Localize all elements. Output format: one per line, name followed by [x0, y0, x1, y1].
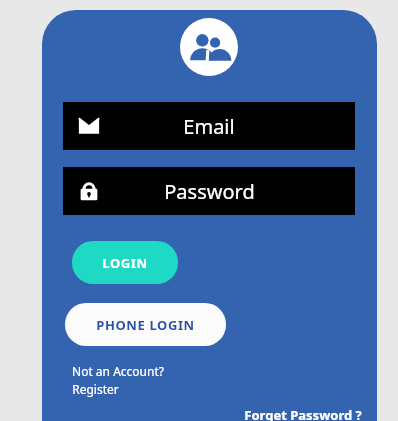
- staticText: PHONE LOGIN: [96, 316, 195, 334]
- staticText: LOGIN: [102, 254, 148, 272]
- button[interactable]: LOGIN: [72, 241, 178, 284]
- button[interactable]: Email: [63, 102, 355, 150]
- button[interactable]: PHONE LOGIN: [65, 303, 226, 346]
- staticText: Email: [183, 113, 235, 140]
- staticText: Not an Account?: [72, 363, 164, 379]
- other: App logo: [180, 18, 238, 76]
- staticText: Password: [164, 178, 255, 205]
- button[interactable]: Not an Account?: [70, 362, 166, 398]
- staticText: Register: [72, 381, 119, 397]
- staticText: Forget Password ?: [244, 406, 362, 421]
- button[interactable]: Forget Password ?: [222, 403, 362, 421]
- button[interactable]: Password: [63, 167, 355, 215]
